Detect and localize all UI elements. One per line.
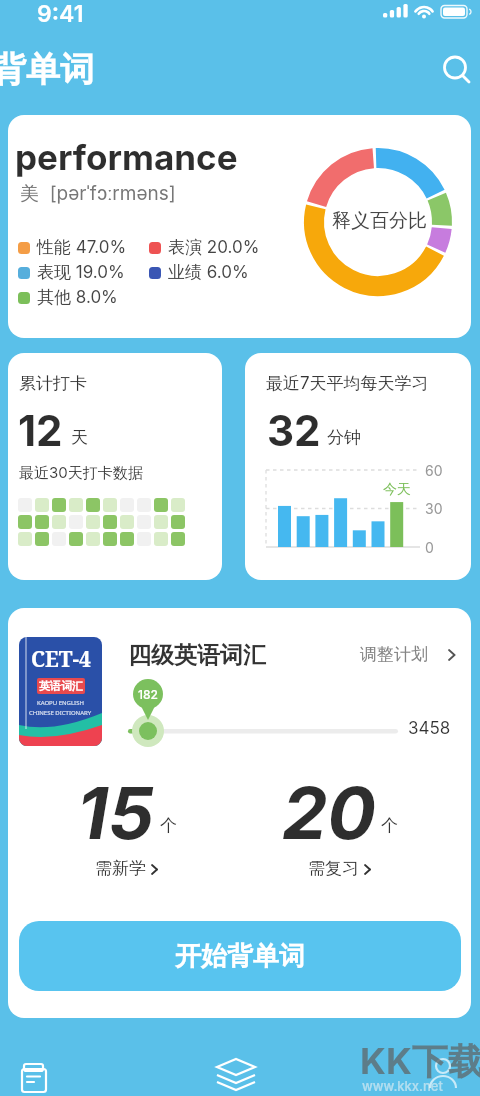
staticText: 32 xyxy=(267,405,321,456)
staticText: 需复习 xyxy=(308,858,359,879)
staticText: 四级英语词汇 xyxy=(128,641,266,670)
staticText: 个 xyxy=(160,815,177,836)
staticText: 表现 19.0% xyxy=(37,262,125,284)
staticText: 12 xyxy=(18,405,63,456)
staticText: 个 xyxy=(381,815,398,836)
staticText: 天 xyxy=(71,427,88,448)
staticText: 开始背单词 xyxy=(175,940,305,973)
button[interactable] xyxy=(436,48,476,88)
staticText: 20 xyxy=(282,769,376,856)
staticText: 业绩 6.0% xyxy=(168,262,249,284)
staticText: KK下载 xyxy=(360,1039,480,1085)
staticText: KAOPU ENGLISH xyxy=(37,699,84,707)
staticText: 其他 8.0% xyxy=(37,287,118,309)
staticText: 分钟 xyxy=(327,427,361,448)
staticText: 最近30天打卡数据 xyxy=(19,463,143,482)
button[interactable]: 最近7天平均每天学习 xyxy=(245,353,471,580)
button[interactable]: 20 xyxy=(225,769,455,879)
staticText: 调整计划 xyxy=(360,644,428,665)
staticText: 30 xyxy=(425,500,443,517)
button[interactable]: 累计打卡 xyxy=(8,353,222,580)
staticText: 3458 xyxy=(408,718,451,739)
button[interactable]: performance xyxy=(8,115,471,338)
button[interactable]: 开始背单词 xyxy=(19,921,461,991)
staticText: CET-4 xyxy=(31,645,91,674)
staticText: 性能 47.0% xyxy=(37,237,127,259)
staticText: 0 xyxy=(425,539,434,556)
button[interactable]: 调整计划 xyxy=(356,642,468,668)
staticText: www.kkx.net xyxy=(362,1078,443,1094)
button[interactable] xyxy=(213,1054,259,1096)
staticText: 最近7天平均每天学习 xyxy=(266,373,429,395)
staticText: 美 [pərˈfɔːrməns] xyxy=(20,182,176,206)
staticText: 今天 xyxy=(383,481,411,499)
staticText: 60 xyxy=(425,462,443,479)
staticText: 英语词汇 xyxy=(39,679,83,693)
staticText: 9:41 xyxy=(37,0,84,28)
staticText: 182 xyxy=(138,687,158,702)
staticText: 释义百分比 xyxy=(332,209,427,233)
staticText: 背单词 xyxy=(0,48,94,91)
staticText: 累计打卡 xyxy=(19,373,87,394)
staticText: 表演 20.0% xyxy=(168,237,260,259)
staticText: performance xyxy=(15,136,238,178)
staticText: 15 xyxy=(77,769,155,856)
button[interactable]: 15 xyxy=(12,769,242,879)
staticText: 需新学 xyxy=(95,858,146,879)
button[interactable] xyxy=(420,1054,466,1096)
button[interactable] xyxy=(12,1054,58,1096)
staticText: CHINESE DICTIONARY xyxy=(29,709,92,717)
